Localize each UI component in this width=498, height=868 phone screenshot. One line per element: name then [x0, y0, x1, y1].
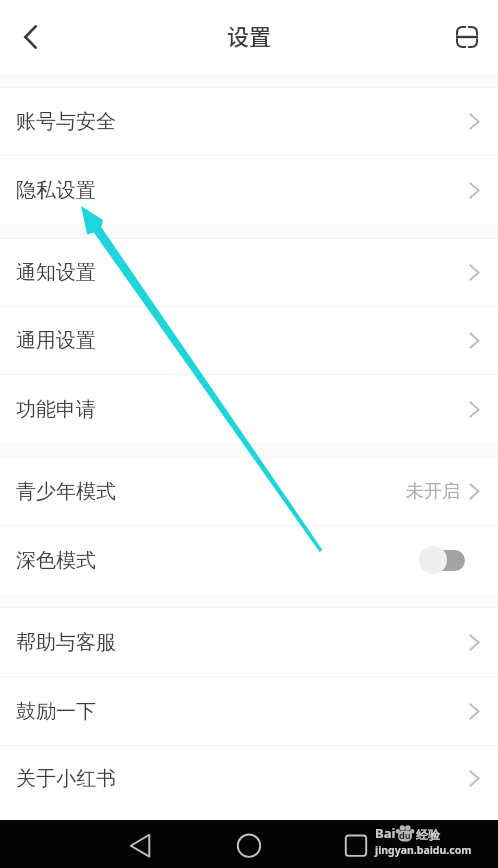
staticText: 青少年模式: [16, 479, 116, 504]
button[interactable]: 帮助与客服: [0, 608, 498, 676]
staticText: 通知设置: [16, 260, 96, 285]
staticText: 关于小红书: [16, 766, 116, 791]
staticText: du: [399, 829, 411, 841]
button[interactable]: 账号与安全: [0, 88, 498, 155]
button[interactable]: 通用设置: [0, 307, 498, 374]
staticText: 设置: [227, 19, 272, 51]
button[interactable]: 隐私设置: [0, 156, 498, 224]
button[interactable]: Scan QR code: [445, 15, 489, 59]
button[interactable]: 鼓励一下: [0, 677, 498, 745]
staticText: 经验: [416, 827, 440, 842]
staticText: 深色模式: [16, 548, 96, 573]
staticText: 帮助与客服: [16, 630, 116, 655]
button[interactable]: 通知设置: [0, 239, 498, 306]
button[interactable]: 深色模式: [0, 526, 498, 594]
button[interactable]: Back: [8, 15, 52, 59]
staticText: Bai: [375, 824, 396, 842]
button[interactable]: 关于小红书: [0, 746, 498, 810]
staticText: 功能申请: [16, 397, 96, 422]
staticText: 隐私设置: [16, 178, 96, 203]
staticText: 通用设置: [16, 328, 96, 353]
staticText: 鼓励一下: [16, 699, 96, 724]
button[interactable]: 功能申请: [0, 375, 498, 443]
button[interactable]: Dark mode toggle: [419, 546, 465, 574]
staticText: 未开启: [406, 480, 460, 503]
staticText: jingyan.baidu.com: [375, 843, 472, 857]
button[interactable]: 青少年模式: [0, 458, 498, 525]
staticText: 账号与安全: [16, 109, 116, 134]
